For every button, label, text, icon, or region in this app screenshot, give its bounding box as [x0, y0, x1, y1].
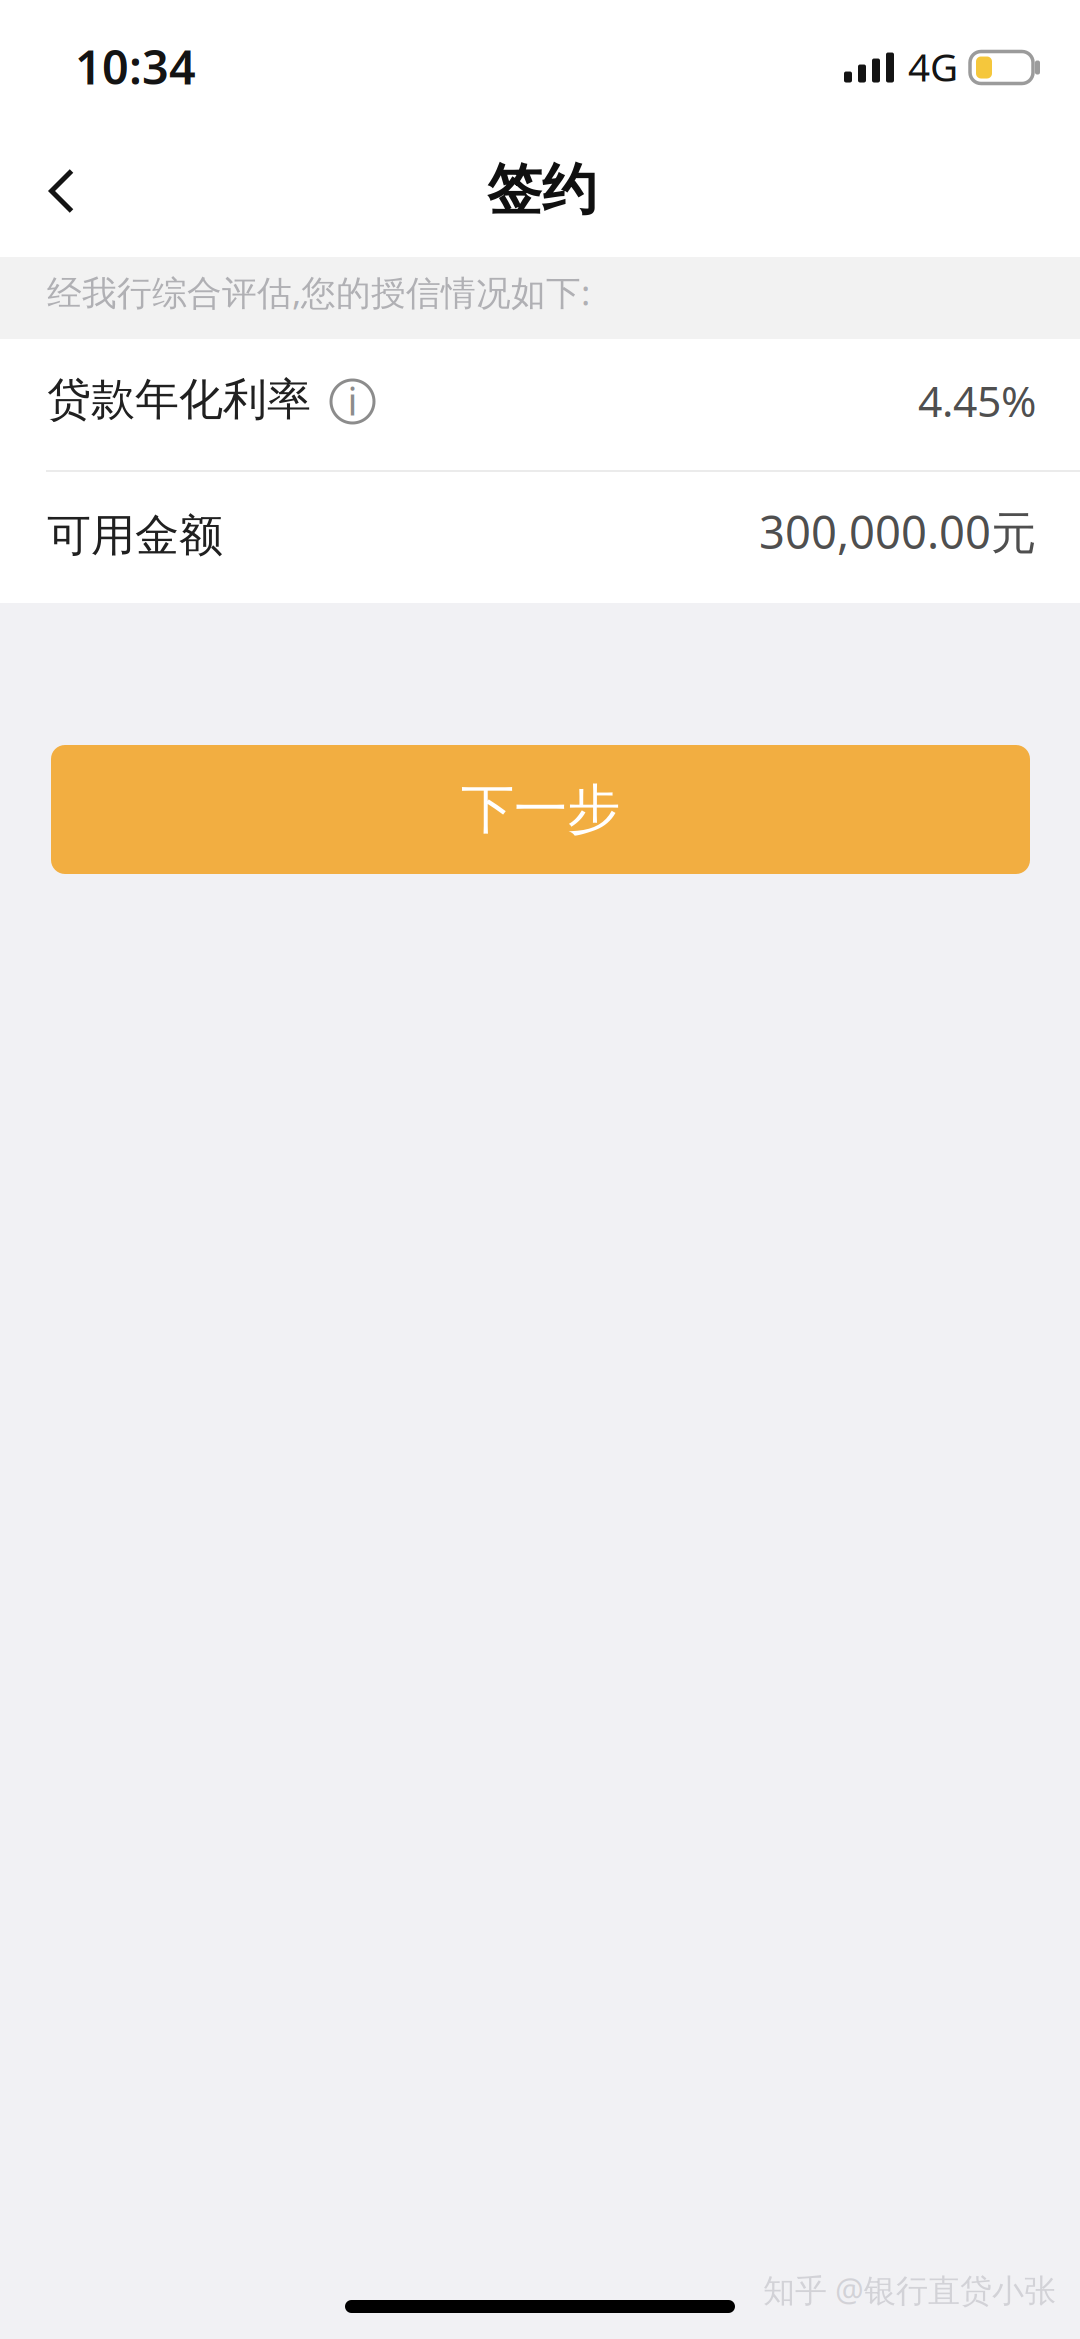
button[interactable]: About the annualised loan rate [311, 383, 374, 426]
staticText: 可用金额 [47, 508, 223, 562]
staticText: 经我行综合评估,您的授信情况如下: [47, 269, 590, 315]
staticText: 签约 [487, 156, 597, 223]
staticText: 4G [908, 41, 958, 92]
staticText: 4.45% [918, 372, 1036, 429]
staticText: 贷款年化利率 [47, 372, 311, 426]
button[interactable]: 下一步 [51, 745, 1030, 874]
staticText: i [347, 375, 357, 426]
button[interactable]: Back [49, 141, 139, 241]
staticText: 下一步 [461, 777, 620, 842]
staticText: 10:34 [75, 35, 196, 97]
staticText: 知乎 @银行直贷小张 [763, 2268, 1056, 2311]
staticText: 300,000.00元 [759, 501, 1036, 562]
